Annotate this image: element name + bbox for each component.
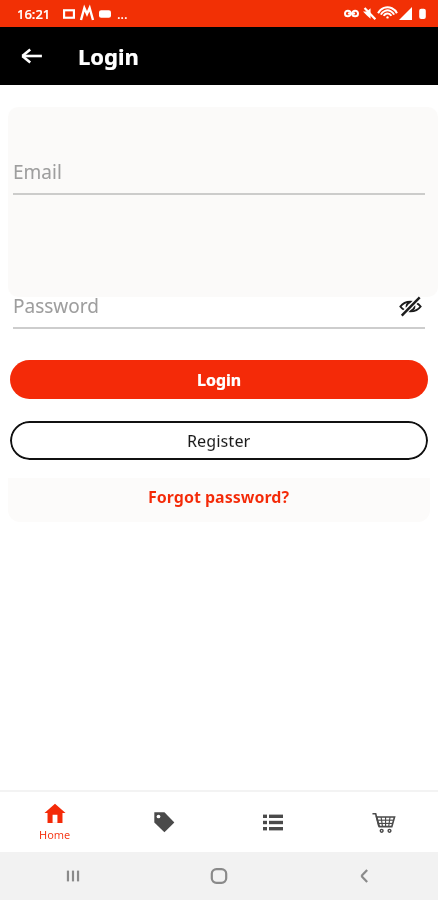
button[interactable]: Back (12, 36, 52, 76)
staticText: Email (13, 159, 62, 185)
staticText: Password (13, 293, 99, 319)
button[interactable]: Forgot password? (8, 478, 430, 522)
button[interactable]: Register (10, 421, 428, 460)
button[interactable]: Email (13, 157, 425, 195)
button[interactable]: Toggle password visibility (395, 291, 425, 321)
button[interactable]: Home (0, 792, 109, 852)
button[interactable]: Password (13, 291, 425, 329)
staticText: Home (39, 827, 71, 842)
staticText: Forgot password? (148, 486, 290, 508)
staticText: Register (187, 430, 251, 452)
button[interactable]: Categories (218, 792, 328, 852)
button[interactable]: Cart (328, 792, 438, 852)
button[interactable]: Login (10, 360, 428, 399)
button[interactable]: Offers (109, 792, 218, 852)
staticText: ... (117, 5, 128, 23)
staticText: Login (197, 369, 242, 391)
staticText: 16:21 (17, 5, 51, 23)
staticText: Login (78, 41, 139, 71)
